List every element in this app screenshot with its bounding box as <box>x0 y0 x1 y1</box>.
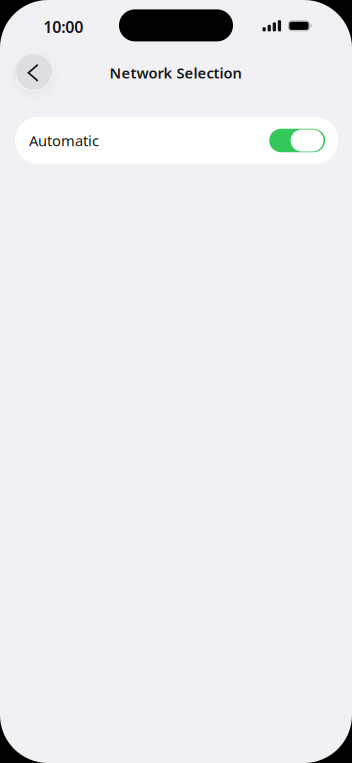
staticText: Network Selection <box>109 63 241 82</box>
button[interactable]: Automatic <box>15 117 338 164</box>
button[interactable]: Back <box>14 53 53 92</box>
staticText: 10:00 <box>43 16 83 37</box>
staticText: Automatic <box>29 131 99 150</box>
